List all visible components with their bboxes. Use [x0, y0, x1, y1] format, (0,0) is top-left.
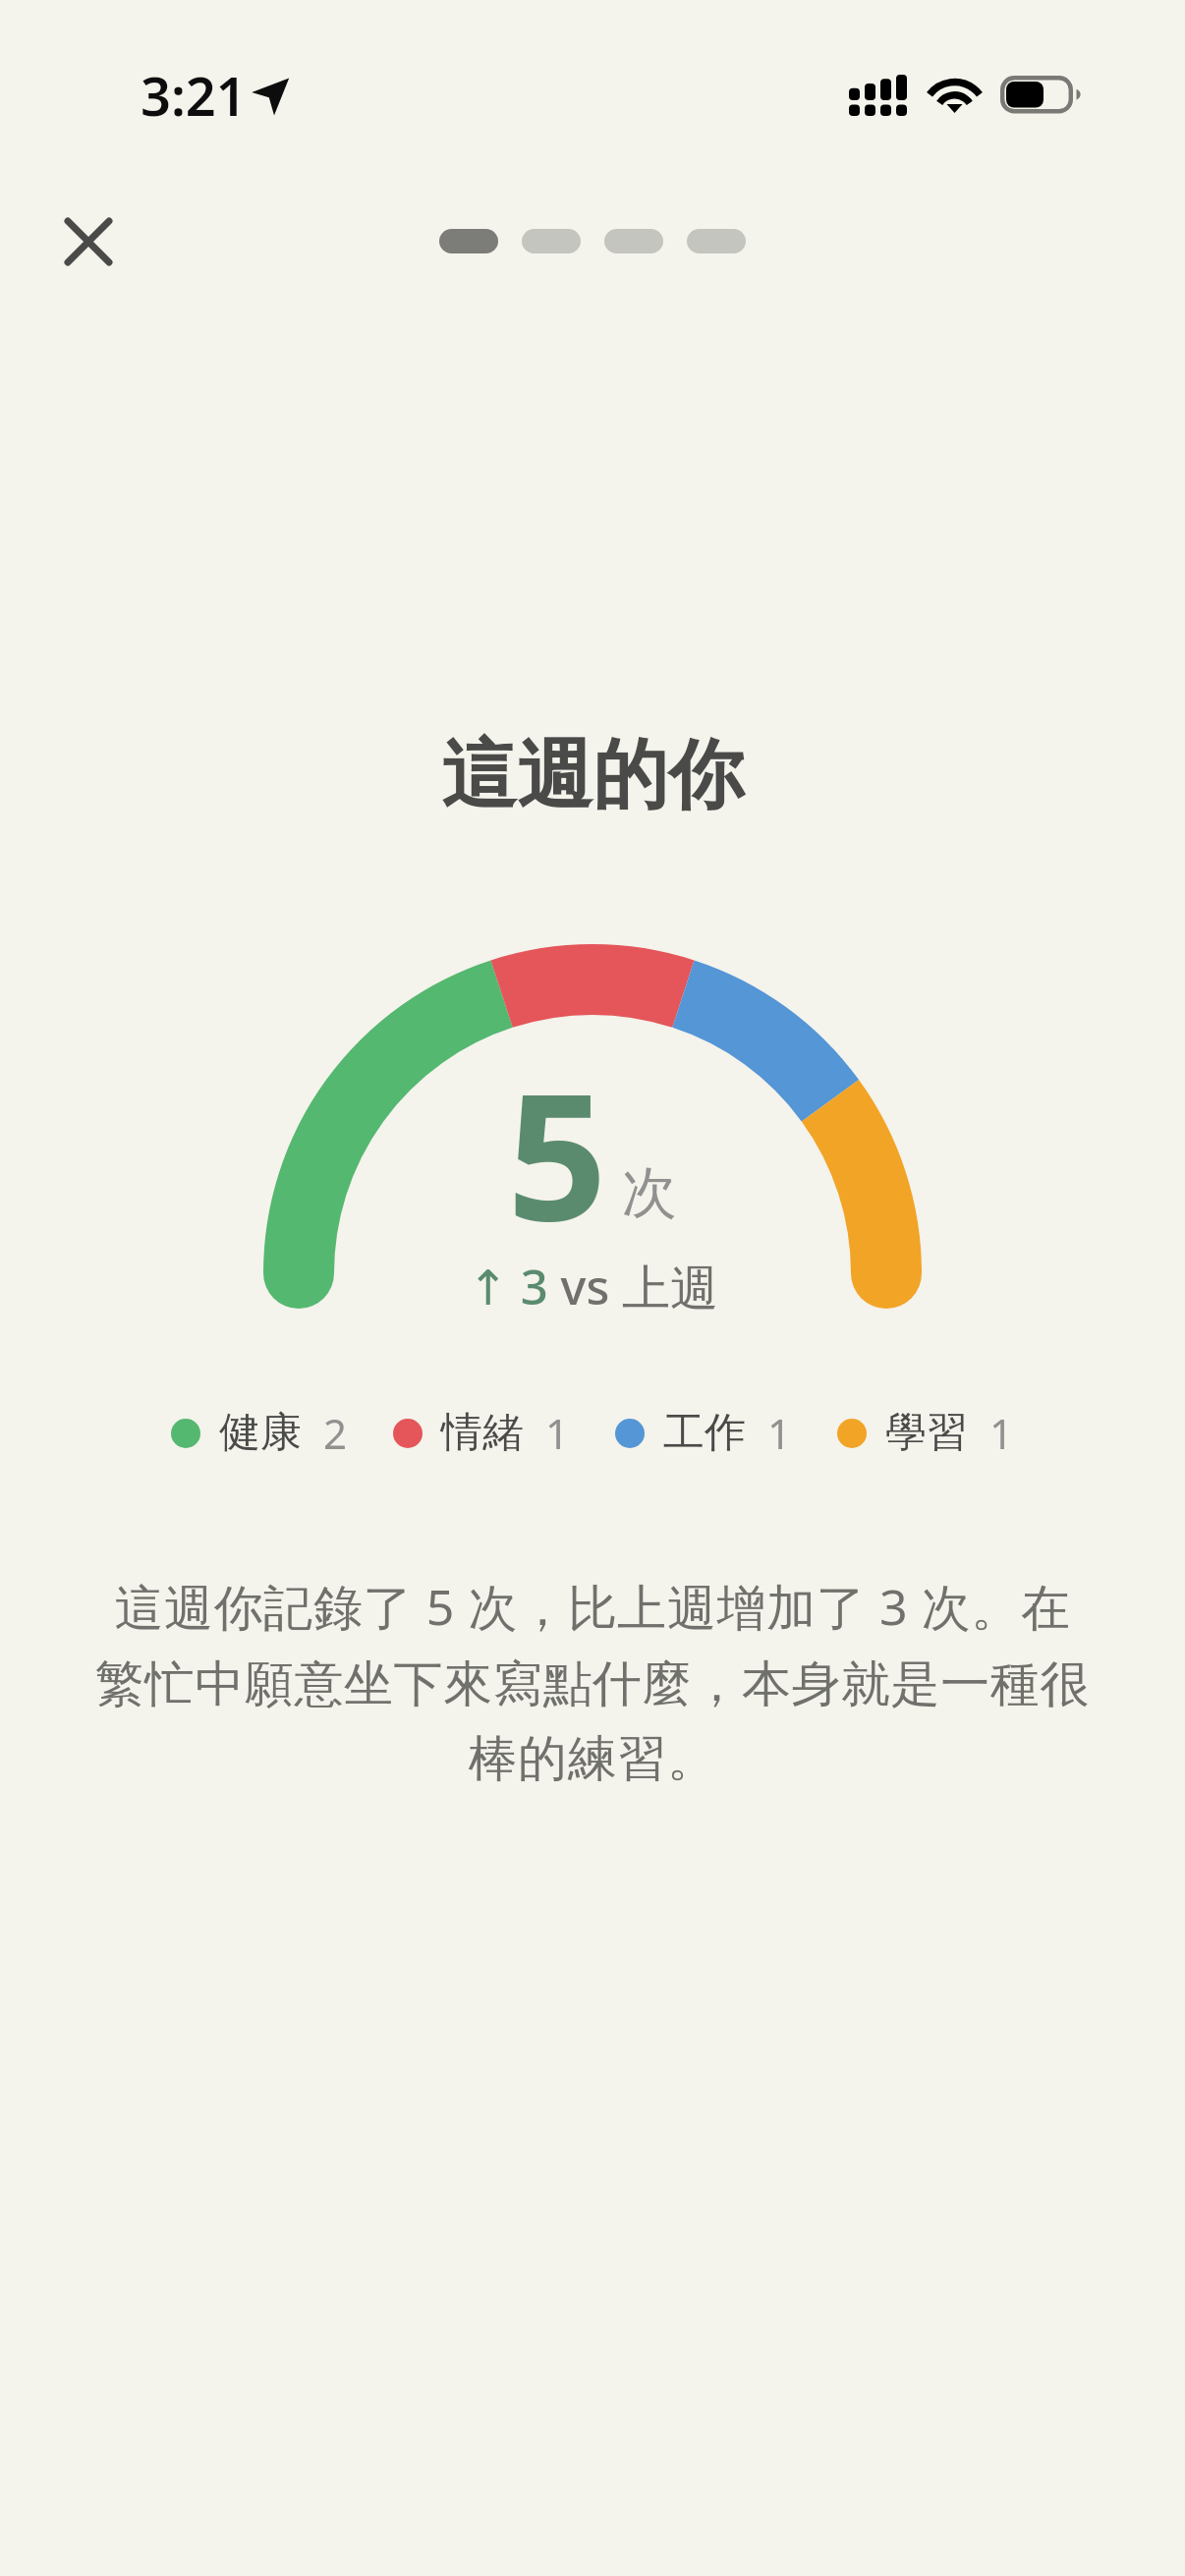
button[interactable]: Page 2 — [522, 229, 581, 253]
button[interactable]: 情緒 — [393, 1405, 570, 1461]
button[interactable]: Close — [41, 195, 136, 289]
button[interactable]: Page 1 — [439, 229, 498, 253]
staticText: 1 — [767, 1405, 792, 1461]
button[interactable]: Page 3 — [604, 229, 663, 253]
button[interactable]: 健康 — [171, 1405, 348, 1461]
staticText: 健康 — [219, 1407, 302, 1459]
button[interactable]: 工作 — [615, 1405, 792, 1461]
staticText: ↑ 3 vs 上週 — [468, 1254, 718, 1319]
staticText: 5 — [507, 1034, 607, 1271]
staticText: 2 — [323, 1405, 348, 1461]
staticText: 1 — [545, 1405, 570, 1461]
staticText: 這週的你 — [0, 728, 1185, 823]
staticText: 工作 — [663, 1407, 746, 1459]
staticText: 3:21 — [141, 59, 247, 132]
button[interactable]: Page 4 — [687, 229, 746, 253]
staticText: 情緒 — [441, 1407, 524, 1459]
button[interactable]: 學習 — [837, 1405, 1014, 1461]
staticText: 學習 — [885, 1407, 968, 1459]
staticText: 這週你記錄了 5 次，比上週增加了 3 次。在 繁忙中願意坐下來寫點什麼，本身就… — [0, 1573, 1185, 1790]
staticText: 1 — [989, 1405, 1014, 1461]
staticText: 次 — [622, 1158, 677, 1228]
